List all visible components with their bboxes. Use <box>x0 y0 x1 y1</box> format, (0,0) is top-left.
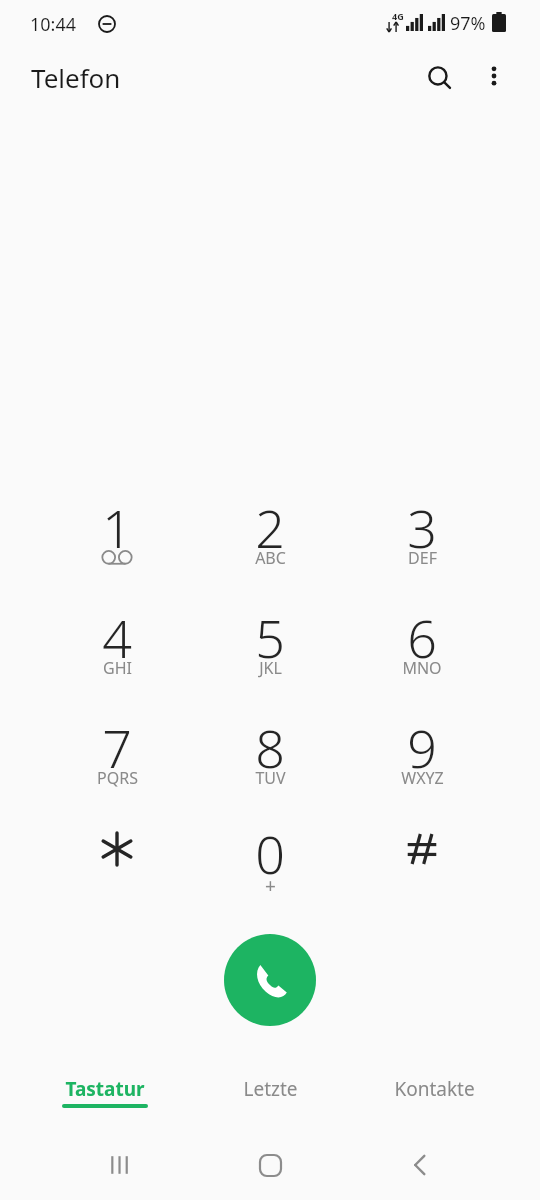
button[interactable]: Recent apps <box>90 1135 150 1195</box>
button[interactable]: Letzte <box>180 1062 360 1114</box>
staticText: Telefon <box>31 60 121 95</box>
staticText: DEF <box>408 547 437 569</box>
staticText: Tastatur <box>65 1076 145 1102</box>
staticText: 1 <box>102 492 132 563</box>
button[interactable]: 3 <box>352 492 492 592</box>
staticText: + <box>265 873 276 899</box>
button[interactable]: Search <box>414 52 466 104</box>
staticText: 3 <box>407 492 437 563</box>
staticText: MNO <box>402 657 442 679</box>
staticText: TUV <box>255 767 286 789</box>
button[interactable]: 4 <box>47 602 187 702</box>
button[interactable]: 1 <box>47 492 187 592</box>
staticText: 5 <box>255 602 285 673</box>
button[interactable]: Call <box>224 934 316 1026</box>
button[interactable]: 5 <box>200 602 340 702</box>
button[interactable]: Kontakte <box>344 1062 524 1114</box>
staticText: Kontakte <box>394 1076 475 1102</box>
staticText: 0 <box>255 818 285 889</box>
button[interactable] <box>47 818 187 918</box>
staticText: 4G <box>392 10 404 22</box>
staticText: 4 <box>102 602 132 673</box>
button[interactable] <box>352 818 492 918</box>
button[interactable]: 6 <box>352 602 492 702</box>
staticText: 6 <box>407 602 437 673</box>
staticText: 9 <box>407 712 437 783</box>
staticText: 97% <box>450 11 486 36</box>
button[interactable]: 0 <box>200 818 340 918</box>
staticText: PQRS <box>97 767 138 789</box>
staticText: 7 <box>102 712 132 783</box>
button[interactable]: 9 <box>352 712 492 812</box>
staticText: WXYZ <box>401 767 444 789</box>
button[interactable]: 8 <box>200 712 340 812</box>
button[interactable]: Back <box>390 1135 450 1195</box>
staticText: ABC <box>255 547 286 569</box>
staticText: 8 <box>255 712 285 783</box>
staticText: 2 <box>255 492 285 563</box>
staticText: 10:44 <box>30 12 77 37</box>
button[interactable]: 7 <box>47 712 187 812</box>
staticText: GHI <box>103 657 132 679</box>
button[interactable]: Tastatur <box>15 1062 195 1114</box>
staticText: Letzte <box>243 1076 298 1102</box>
button[interactable]: More options <box>470 52 518 100</box>
staticText: JKL <box>259 657 282 679</box>
button[interactable]: 2 <box>200 492 340 592</box>
button[interactable]: Home <box>240 1135 300 1195</box>
